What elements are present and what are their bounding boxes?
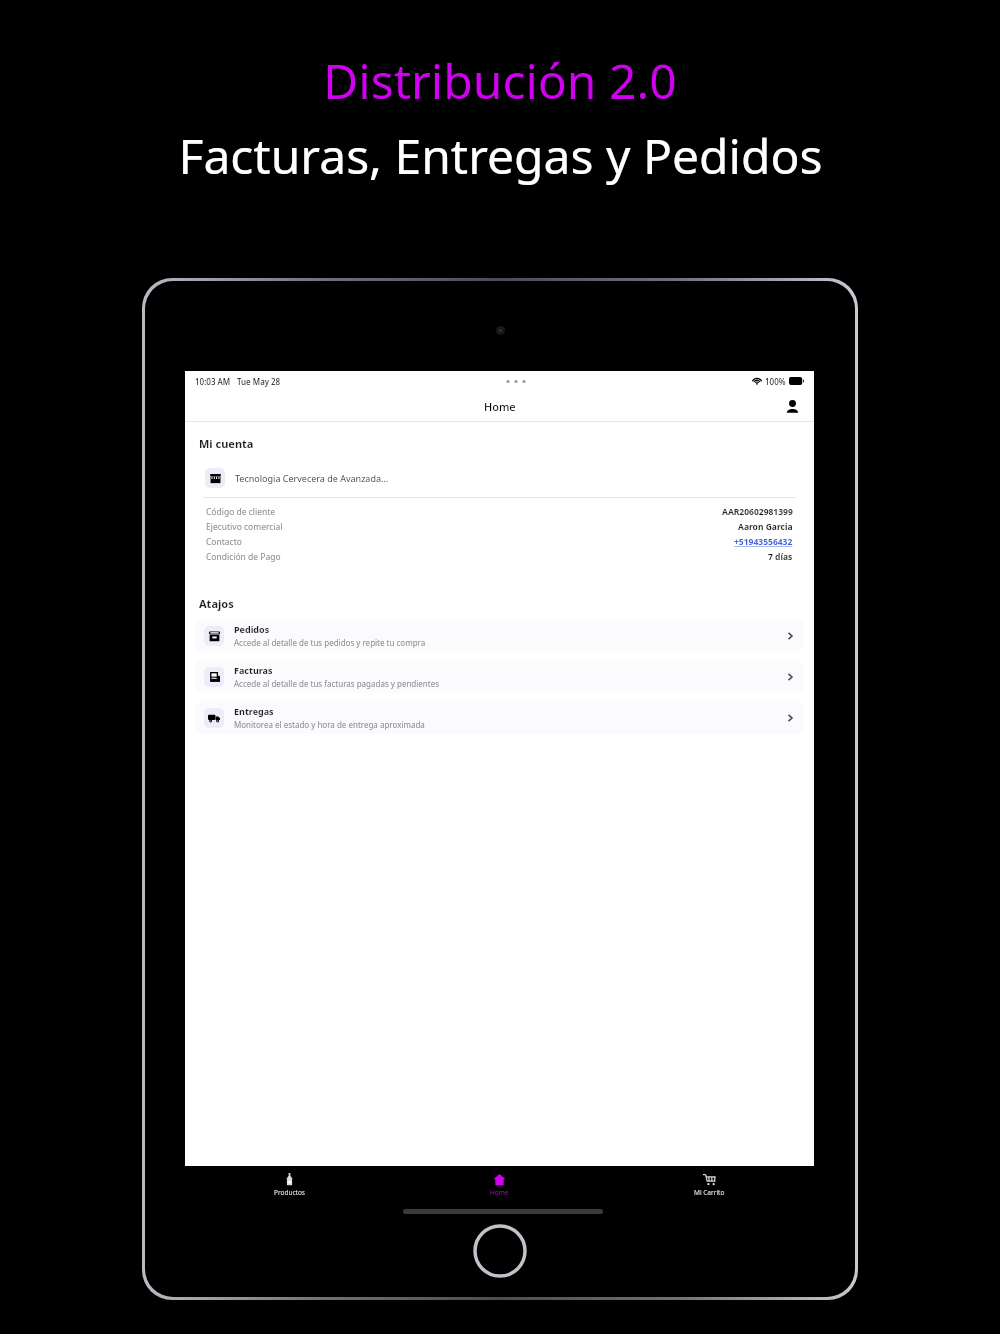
staticText: Facturas bbox=[234, 664, 273, 676]
staticText: Ejecutivo comercial bbox=[206, 521, 283, 533]
staticText: Entregas bbox=[234, 705, 274, 717]
staticText: Código de cliente bbox=[206, 506, 276, 518]
staticText: Atajos bbox=[199, 596, 234, 611]
staticText: Home bbox=[490, 1188, 509, 1197]
staticText: Mi Carrito bbox=[694, 1188, 725, 1197]
staticText: Aaron Garcia bbox=[738, 521, 793, 533]
staticText: Tue May 28 bbox=[237, 376, 281, 387]
staticText: AAR20602981399 bbox=[722, 506, 793, 518]
button[interactable]: Profile bbox=[780, 394, 804, 418]
button[interactable]: Productos bbox=[185, 1168, 394, 1202]
staticText: Monitorea el estado y hora de entrega ap… bbox=[234, 719, 425, 730]
staticText: +51943556432 bbox=[734, 536, 793, 548]
button[interactable]: Facturas bbox=[195, 660, 804, 693]
staticText: Distribución 2.0 bbox=[323, 48, 677, 113]
staticText: Facturas, Entregas y Pedidos bbox=[178, 123, 823, 188]
staticText: 100% bbox=[765, 376, 786, 387]
staticText: Accede al detalle de tus pedidos y repit… bbox=[234, 637, 426, 648]
button[interactable]: Pedidos bbox=[195, 619, 804, 652]
staticText: Productos bbox=[274, 1188, 305, 1197]
staticText: Contacto bbox=[206, 536, 242, 548]
staticText: Tecnologia Cervecera de Avanzada... bbox=[235, 472, 389, 484]
staticText: Home bbox=[484, 399, 516, 414]
button[interactable]: Entregas bbox=[195, 701, 804, 734]
staticText: Accede al detalle de tus facturas pagada… bbox=[234, 678, 440, 689]
staticText: Condición de Pago bbox=[206, 551, 281, 563]
staticText: 7 días bbox=[768, 551, 793, 563]
staticText: Mi cuenta bbox=[199, 436, 254, 451]
button[interactable]: Tecnologia Cervecera de Avanzada... bbox=[195, 459, 804, 570]
button[interactable]: Home bbox=[394, 1168, 604, 1202]
button[interactable]: Mi Carrito bbox=[604, 1168, 814, 1202]
staticText: Pedidos bbox=[234, 623, 270, 635]
staticText: 10:03 AM bbox=[195, 376, 231, 387]
